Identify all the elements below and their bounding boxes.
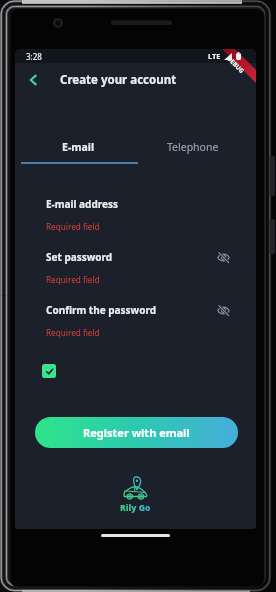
staticText: Rily Go <box>120 502 151 514</box>
staticText: Register with email <box>83 425 190 440</box>
button[interactable]: Back <box>15 63 51 97</box>
button[interactable]: Show password <box>215 302 231 318</box>
staticText: E-mail address <box>46 197 119 211</box>
button[interactable]: Register with email <box>35 417 238 448</box>
staticText: LTE <box>208 51 221 61</box>
button[interactable]: Telephone <box>135 131 250 162</box>
staticText: DEBUG <box>225 55 246 75</box>
staticText: Required field <box>46 274 100 285</box>
staticText: Create your account <box>60 72 177 88</box>
staticText: 3:28 <box>26 51 42 62</box>
button[interactable]: E-mail <box>21 131 135 162</box>
staticText: Required field <box>46 327 100 338</box>
staticText: Required field <box>46 221 100 232</box>
staticText: Confirm the password <box>46 303 156 317</box>
staticText: Set password <box>46 250 113 264</box>
button[interactable]: Accept terms <box>42 364 56 378</box>
staticText: Telephone <box>167 140 219 154</box>
button[interactable]: Show password <box>215 249 231 265</box>
staticText: E-mail <box>62 140 95 154</box>
